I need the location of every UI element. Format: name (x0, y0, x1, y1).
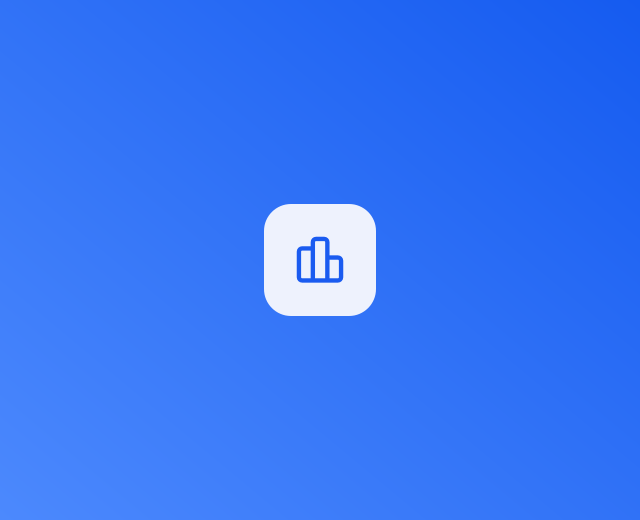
button[interactable]: Analytics (264, 204, 376, 316)
